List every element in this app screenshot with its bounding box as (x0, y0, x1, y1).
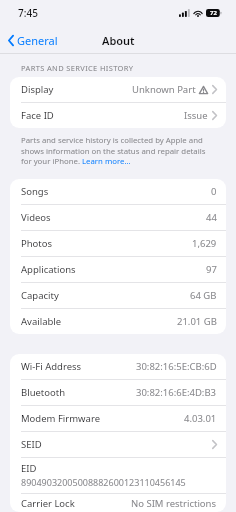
staticText: General (17, 33, 58, 48)
button[interactable]: SEID (10, 432, 226, 457)
button[interactable]: Face ID (10, 103, 226, 128)
staticText: EID (21, 462, 37, 475)
staticText: About (102, 33, 135, 48)
staticText: Videos (21, 211, 51, 224)
staticText: 30:82:16:6E:4D:B3 (136, 386, 217, 399)
button[interactable]: Display (10, 77, 226, 102)
staticText: 7:45 (18, 6, 38, 20)
staticText: 30:82:16:5E:CB:6D (136, 360, 217, 373)
staticText: Display (21, 83, 54, 96)
staticText: No SIM restrictions (131, 497, 217, 510)
staticText: 97 (206, 263, 217, 276)
button[interactable]: General (0, 28, 64, 53)
staticText: Bluetooth (21, 386, 66, 399)
staticText: 72 (210, 9, 217, 17)
staticText: Available (21, 315, 62, 328)
staticText: Songs (21, 185, 49, 198)
staticText: 89049032005008882600123110456145 (21, 476, 186, 488)
staticText: Issue (184, 109, 208, 122)
staticText: Modem Firmware (21, 412, 100, 425)
staticText: Face ID (21, 109, 54, 122)
staticText: Parts and service history is collected b… (21, 135, 215, 167)
staticText: 1,629 (192, 237, 217, 250)
staticText: Wi-Fi Address (21, 360, 82, 373)
staticText: PARTS AND SERVICE HISTORY (21, 63, 134, 73)
staticText: Unknown Part (132, 83, 196, 96)
staticText: 44 (206, 211, 217, 224)
staticText: Photos (21, 237, 53, 250)
staticText: 0 (211, 185, 217, 198)
staticText: SEID (21, 438, 42, 451)
button[interactable]: EID (10, 458, 226, 493)
staticText: 21.01 GB (177, 315, 217, 328)
staticText: Capacity (21, 289, 59, 302)
staticText: 64 GB (190, 289, 217, 302)
staticText: 4.03.01 (184, 412, 217, 425)
staticText: Carrier Lock (21, 497, 75, 510)
staticText: Applications (21, 263, 76, 276)
